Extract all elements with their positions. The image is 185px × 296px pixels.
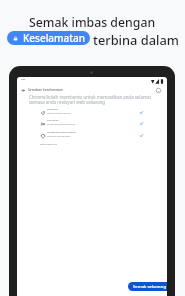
button[interactable]: Kata laluan [17, 119, 167, 129]
staticText: Penyemakan Imbas Selamat [47, 131, 76, 134]
staticText: Kata laluan [47, 119, 59, 122]
button[interactable]: Help [153, 85, 164, 96]
staticText: terbina dalam [93, 31, 179, 45]
staticText: semasa anda melayari web sekarang [29, 99, 106, 105]
staticText: Perlindungan standard dihidupkan [47, 135, 71, 137]
staticText: 9:30 [21, 78, 26, 81]
staticText: Tiada kata laluan yang terjejas ditemuka… [47, 123, 76, 125]
staticText: Chrome boleh membantu untuk memastikan a… [29, 94, 152, 100]
staticText: Kemas kini [47, 108, 58, 111]
button[interactable]: Back [18, 85, 29, 96]
staticText: Google Chrome adalah yang terkini [47, 112, 71, 114]
button[interactable]: Penyemakan Imbas Selamat [17, 131, 167, 141]
staticText: Semakan keselamatan [28, 87, 63, 91]
button[interactable]: Semak sekarang [128, 282, 167, 291]
staticText: Keselamatan [23, 31, 86, 45]
staticText: Disemak sebentar tadi [40, 143, 57, 145]
button[interactable]: Kemas kini [17, 108, 167, 118]
staticText: Semak sekarang [133, 284, 166, 290]
staticText: Semak imbas dengan [29, 14, 156, 31]
